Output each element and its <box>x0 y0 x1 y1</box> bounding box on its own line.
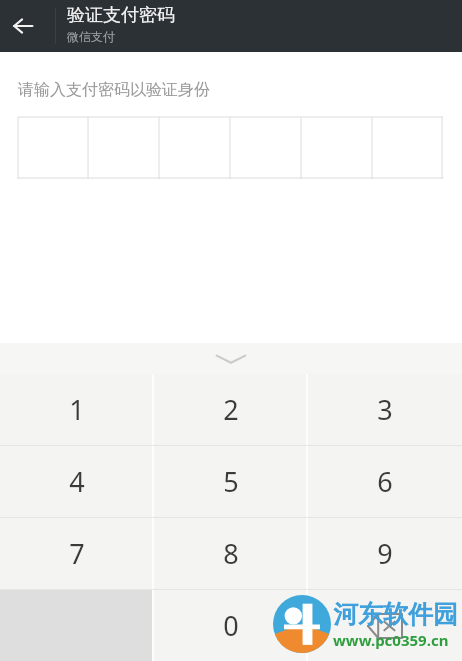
staticText: www.pc0359.cn <box>333 630 449 650</box>
staticText: 7 <box>69 535 85 572</box>
button[interactable]: 6 <box>308 446 462 517</box>
button[interactable]: 2 <box>154 374 308 445</box>
staticText: 河东软件园 <box>333 599 458 630</box>
staticText: 9 <box>377 535 393 572</box>
button[interactable]: 9 <box>308 518 462 589</box>
button[interactable]: 0 <box>154 590 308 661</box>
button[interactable] <box>0 590 154 661</box>
staticText: 请输入支付密码以验证身份 <box>18 80 210 100</box>
button[interactable]: Back <box>0 0 46 52</box>
button[interactable] <box>18 117 443 179</box>
staticText: 微信支付 <box>67 29 115 44</box>
button[interactable]: Delete <box>308 590 462 661</box>
staticText: 4 <box>69 463 85 500</box>
staticText: 0 <box>223 607 239 644</box>
button[interactable]: 4 <box>0 446 154 517</box>
button[interactable]: 7 <box>0 518 154 589</box>
staticText: 5 <box>223 463 239 500</box>
staticText: 1 <box>69 391 85 428</box>
staticText: 6 <box>377 463 393 500</box>
button[interactable]: 3 <box>308 374 462 445</box>
button[interactable]: 8 <box>154 518 308 589</box>
staticText: 验证支付密码 <box>67 4 175 27</box>
button[interactable]: 1 <box>0 374 154 445</box>
staticText: 3 <box>377 391 393 428</box>
staticText: 8 <box>223 535 239 572</box>
staticText: 2 <box>223 391 239 428</box>
button[interactable]: 5 <box>154 446 308 517</box>
